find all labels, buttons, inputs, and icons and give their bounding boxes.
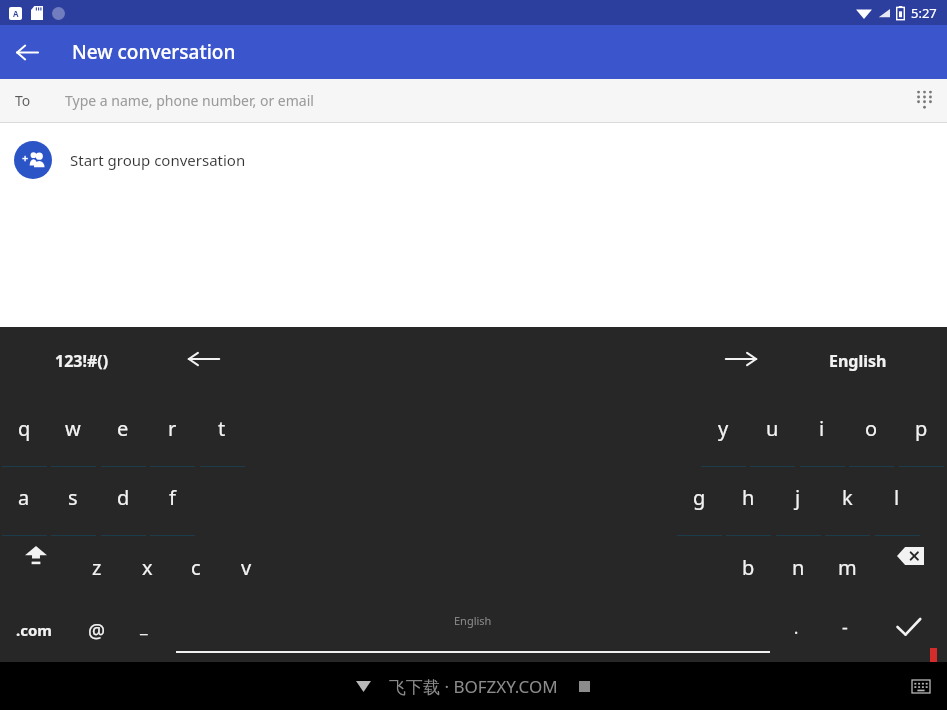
staticText: i: [819, 415, 825, 442]
staticText: e: [117, 415, 129, 442]
button[interactable]: Shift: [10, 533, 62, 579]
staticText: k: [842, 484, 853, 511]
staticText: q: [18, 415, 31, 442]
staticText: To: [15, 91, 31, 110]
button[interactable]: To: [0, 79, 947, 122]
button[interactable]: Next: [722, 345, 760, 373]
button[interactable]: b: [723, 548, 773, 606]
staticText: w: [65, 415, 81, 442]
staticText: g: [693, 484, 706, 511]
button[interactable]: Backspace: [884, 533, 936, 579]
staticText: n: [792, 554, 805, 581]
button[interactable]: p: [896, 409, 946, 467]
staticText: -: [842, 615, 848, 640]
button[interactable]: Previous: [185, 345, 223, 373]
button[interactable]: g: [674, 478, 724, 536]
button[interactable]: q: [0, 409, 49, 467]
button[interactable]: Start group conversation: [0, 123, 947, 197]
button[interactable]: Enter: [884, 605, 932, 649]
staticText: z: [92, 554, 102, 581]
button[interactable]: x: [122, 548, 172, 606]
button[interactable]: Space: [176, 599, 770, 653]
staticText: English: [454, 613, 492, 628]
button[interactable]: o: [846, 409, 896, 467]
staticText: Type a name, phone number, or email: [65, 91, 314, 110]
staticText: Start group conversation: [70, 150, 246, 170]
staticText: New conversation: [72, 39, 236, 65]
button[interactable]: Hide keyboard: [349, 672, 377, 700]
button[interactable]: z: [72, 548, 122, 606]
staticText: f: [169, 484, 176, 511]
button[interactable]: t: [197, 409, 247, 467]
staticText: English: [829, 350, 887, 372]
staticText: s: [68, 484, 78, 511]
staticText: .: [794, 617, 799, 639]
staticText: @: [88, 618, 106, 644]
button[interactable]: a: [0, 478, 49, 536]
staticText: y: [718, 415, 729, 442]
button[interactable]: e: [98, 409, 148, 467]
button[interactable]: n: [773, 548, 823, 606]
staticText: 123!#(): [55, 350, 109, 372]
button[interactable]: j: [773, 478, 823, 536]
staticText: h: [742, 484, 755, 511]
button[interactable]: i: [797, 409, 847, 467]
staticText: m: [838, 554, 857, 581]
staticText: .com: [16, 620, 52, 640]
staticText: v: [241, 554, 252, 581]
button[interactable]: c: [171, 548, 221, 606]
staticText: b: [742, 554, 755, 581]
button[interactable]: Recents: [570, 672, 598, 700]
staticText: t: [218, 415, 226, 442]
button[interactable]: m: [822, 548, 872, 606]
staticText: j: [795, 484, 801, 511]
button[interactable]: k: [822, 478, 872, 536]
staticText: 5:27: [911, 4, 937, 22]
staticText: x: [142, 554, 153, 581]
staticText: a: [18, 484, 30, 511]
button[interactable]: Back: [0, 25, 54, 79]
button[interactable]: v: [221, 548, 271, 606]
button[interactable]: r: [147, 409, 197, 467]
button[interactable]: w: [48, 409, 98, 467]
staticText: 飞下载 · BOFZXY.COM: [389, 675, 558, 698]
staticText: l: [894, 484, 900, 511]
button[interactable]: u: [747, 409, 797, 467]
staticText: d: [117, 484, 130, 511]
staticText: u: [766, 415, 779, 442]
button[interactable]: Switch keyboard: [908, 673, 934, 699]
staticText: _: [140, 615, 148, 638]
button[interactable]: Dialpad: [901, 79, 947, 122]
staticText: p: [915, 415, 928, 442]
staticText: o: [865, 415, 878, 442]
button[interactable]: y: [698, 409, 748, 467]
button[interactable]: f: [147, 478, 197, 536]
staticText: r: [168, 415, 177, 442]
button[interactable]: l: [872, 478, 922, 536]
button[interactable]: h: [723, 478, 773, 536]
button[interactable]: d: [98, 478, 148, 536]
staticText: c: [191, 554, 201, 581]
button[interactable]: s: [48, 478, 98, 536]
staticText: A: [13, 8, 19, 19]
